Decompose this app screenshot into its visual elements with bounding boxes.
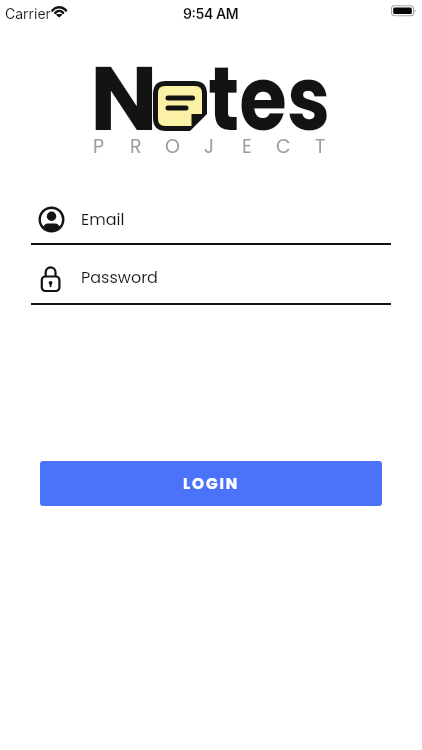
staticText: Carrier [5,5,51,22]
button[interactable]: LOGIN [40,461,382,506]
staticText: P [93,133,105,160]
staticText: LOGIN [183,473,239,494]
staticText: tes [208,36,331,162]
staticText: R [130,133,142,160]
staticText: O [165,133,180,160]
staticText: J [204,133,215,160]
staticText: Email [81,208,125,230]
staticText: E [242,133,252,160]
staticText: Password [81,266,158,288]
staticText: N [90,36,158,162]
staticText: T [315,133,326,160]
staticText: 9:54 AM [183,5,239,22]
button[interactable]: Email [31,198,391,245]
button[interactable]: Password [31,258,391,305]
staticText: C [276,133,291,160]
